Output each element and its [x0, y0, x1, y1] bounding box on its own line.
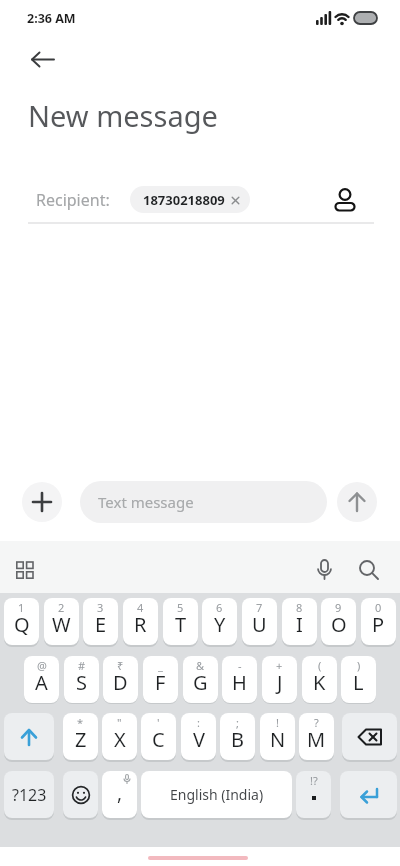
button[interactable]: 0	[361, 598, 396, 645]
button[interactable]: !	[260, 713, 295, 760]
staticText: Y	[214, 611, 226, 638]
staticText: R	[134, 611, 147, 638]
staticText: ,	[117, 780, 123, 806]
staticText: U	[252, 611, 267, 638]
staticText: P	[372, 611, 385, 638]
button[interactable]: #	[64, 656, 99, 703]
staticText: Recipient:	[36, 189, 110, 211]
staticText: :	[197, 715, 200, 730]
button[interactable]	[22, 482, 62, 522]
button[interactable]: :	[181, 713, 216, 760]
button[interactable]: @	[24, 656, 59, 703]
staticText: N	[270, 726, 286, 753]
button[interactable]: +	[262, 656, 297, 703]
button[interactable]: ?123	[4, 771, 54, 818]
button[interactable]	[331, 183, 359, 213]
button[interactable]: &	[183, 656, 218, 703]
staticText: ₹	[117, 658, 124, 673]
staticText: A	[35, 669, 48, 696]
staticText: 4	[137, 600, 144, 615]
staticText: ?123	[12, 784, 47, 806]
button[interactable]: 4	[123, 598, 158, 645]
staticText: "	[117, 715, 122, 730]
button[interactable]	[355, 556, 383, 584]
staticText: Text message	[98, 492, 194, 512]
button[interactable]: Text message	[80, 481, 327, 523]
staticText: ?	[314, 715, 319, 730]
staticText: !	[276, 715, 279, 730]
staticText: J	[277, 669, 283, 696]
staticText: 18730218809	[143, 191, 225, 209]
staticText: *	[77, 715, 84, 730]
staticText: 9	[335, 600, 342, 615]
button[interactable]: English (India)	[141, 771, 292, 818]
button[interactable]	[340, 771, 397, 818]
staticText: B	[231, 726, 244, 753]
button[interactable]	[12, 558, 38, 582]
button[interactable]: 1	[4, 598, 39, 645]
staticText: !?	[310, 773, 318, 788]
staticText: ;	[236, 715, 239, 730]
staticText: D	[113, 669, 128, 696]
staticText: +	[276, 658, 283, 673]
staticText: '	[157, 715, 160, 730]
button[interactable]: 5	[163, 598, 198, 645]
staticText: -	[238, 658, 242, 673]
button[interactable]: 6	[202, 598, 237, 645]
button[interactable]: !?	[296, 771, 331, 818]
button[interactable]: 2	[44, 598, 79, 645]
staticText: X	[114, 726, 126, 753]
button[interactable]: "	[102, 713, 137, 760]
staticText: T	[175, 611, 187, 638]
staticText: F	[155, 669, 166, 696]
staticText: 6	[216, 600, 223, 615]
staticText: 8	[296, 600, 303, 615]
staticText: 2:36 AM	[27, 10, 76, 27]
staticText: )	[357, 658, 361, 673]
button[interactable]: 8	[282, 598, 317, 645]
staticText: 1	[18, 600, 25, 615]
button[interactable]	[63, 771, 98, 818]
staticText: (	[318, 658, 322, 673]
staticText: Q	[14, 611, 30, 638]
staticText: L	[353, 669, 364, 696]
button[interactable]: 9	[321, 598, 356, 645]
staticText: _	[158, 658, 163, 673]
button[interactable]: 18730218809	[130, 186, 250, 213]
staticText: #	[78, 658, 86, 673]
staticText: K	[313, 669, 326, 696]
staticText: 0	[375, 600, 382, 615]
staticText: English (India)	[170, 785, 264, 804]
staticText: V	[193, 726, 205, 753]
button[interactable]: )	[341, 656, 376, 703]
button[interactable]: *	[63, 713, 98, 760]
button[interactable]: ₹	[103, 656, 138, 703]
button[interactable]: _	[143, 656, 178, 703]
staticText: C	[152, 726, 165, 753]
button[interactable]: 3	[83, 598, 118, 645]
staticText: &	[196, 658, 205, 673]
staticText: 3	[97, 600, 104, 615]
staticText: E	[95, 611, 107, 638]
staticText: H	[232, 669, 247, 696]
staticText: I	[296, 611, 303, 638]
button[interactable]: 7	[242, 598, 277, 645]
staticText: S	[76, 669, 87, 696]
button[interactable]	[342, 713, 397, 760]
button[interactable]	[30, 50, 56, 69]
button[interactable]: ?	[299, 713, 334, 760]
staticText: W	[52, 611, 71, 638]
staticText: New message	[28, 96, 218, 135]
staticText: 7	[256, 600, 263, 615]
button[interactable]	[337, 482, 377, 522]
button[interactable]: -	[222, 656, 257, 703]
button[interactable]: '	[141, 713, 176, 760]
staticText: O	[331, 611, 347, 638]
staticText: Z	[75, 726, 87, 753]
button[interactable]: ,	[102, 771, 137, 818]
button[interactable]: (	[302, 656, 337, 703]
button[interactable]	[312, 558, 337, 584]
button[interactable]	[4, 713, 54, 760]
staticText: M	[307, 726, 326, 753]
button[interactable]: ;	[220, 713, 255, 760]
